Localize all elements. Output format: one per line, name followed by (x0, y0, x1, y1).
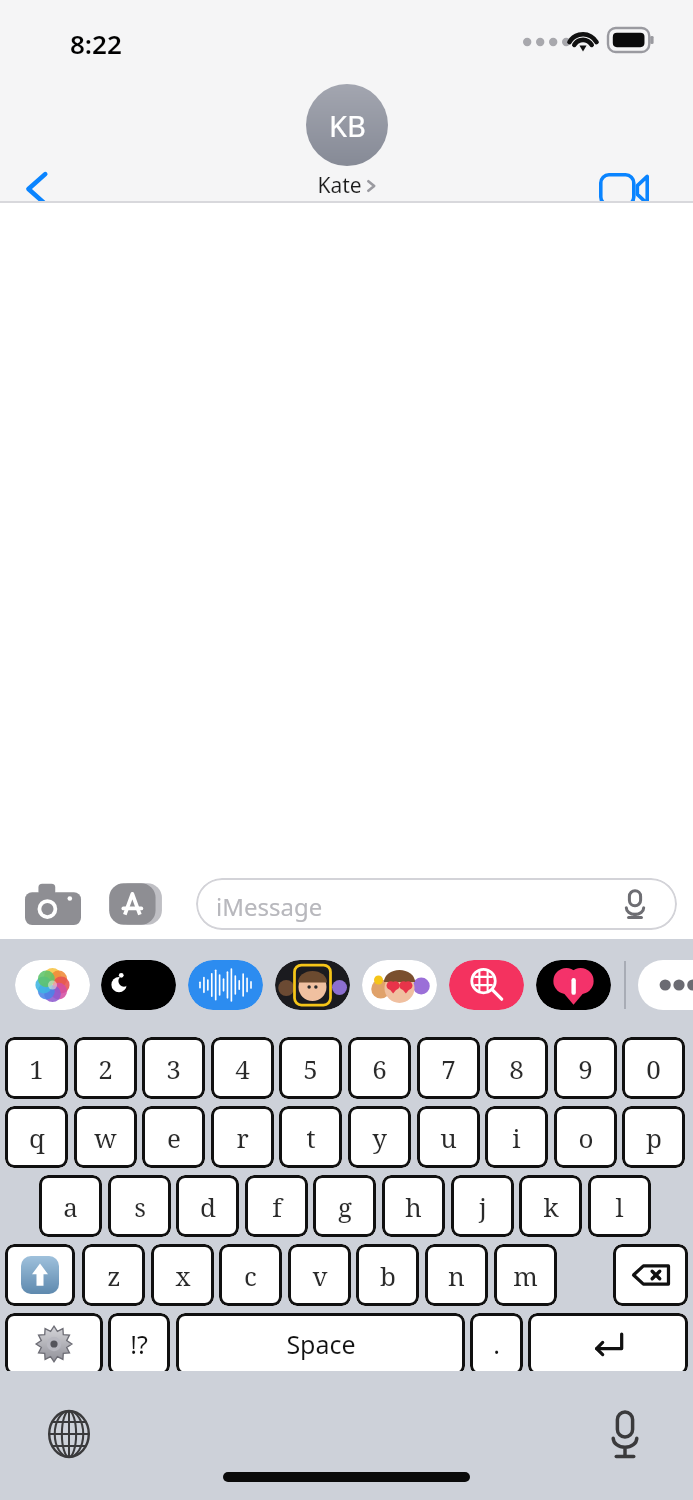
staticText: c (244, 1258, 257, 1293)
staticText: j (479, 1189, 487, 1224)
button[interactable]: 8 (485, 1037, 548, 1099)
button[interactable]: iMessage (196, 878, 677, 930)
button[interactable]: w (74, 1106, 137, 1168)
button[interactable]: v (288, 1244, 351, 1306)
staticText: m (513, 1258, 538, 1293)
staticText: 6 (372, 1051, 387, 1086)
staticText: b (380, 1258, 396, 1293)
staticText: h (405, 1189, 422, 1224)
button[interactable]: Shift (5, 1244, 75, 1306)
staticText: u (440, 1120, 457, 1155)
button[interactable]: 3 (142, 1037, 205, 1099)
button[interactable]: 6 (348, 1037, 411, 1099)
button[interactable]: . (470, 1313, 523, 1375)
button[interactable]: n (425, 1244, 488, 1306)
staticText: 7 (441, 1051, 456, 1086)
button[interactable]: e (142, 1106, 205, 1168)
button[interactable]: iMessage app (101, 960, 176, 1010)
staticText: z (107, 1258, 121, 1293)
button[interactable]: Return (528, 1313, 688, 1375)
button[interactable]: r (211, 1106, 274, 1168)
button[interactable]: iMessage app (188, 960, 263, 1010)
staticText: w (94, 1120, 117, 1155)
button[interactable]: p (622, 1106, 685, 1168)
staticText: s (134, 1189, 146, 1224)
button[interactable]: Camera (16, 880, 90, 928)
button[interactable]: 5 (279, 1037, 342, 1099)
staticText: e (167, 1120, 181, 1155)
staticText: Kate (317, 171, 362, 200)
button[interactable]: t (279, 1106, 342, 1168)
button[interactable]: c (219, 1244, 282, 1306)
staticText: 5 (303, 1051, 318, 1086)
staticText: a (63, 1189, 78, 1224)
button[interactable]: Dictate (592, 1403, 658, 1465)
button[interactable]: i (485, 1106, 548, 1168)
staticText: 3 (166, 1051, 181, 1086)
button[interactable]: 4 (211, 1037, 274, 1099)
button[interactable]: iMessage app (449, 960, 524, 1010)
staticText: l (615, 1189, 624, 1224)
staticText: . (493, 1327, 500, 1361)
staticText: n (448, 1258, 465, 1293)
button[interactable]: k (519, 1175, 582, 1237)
button[interactable]: !? (108, 1313, 170, 1375)
staticText: i (512, 1120, 521, 1155)
button[interactable]: s (108, 1175, 171, 1237)
staticText: 8:22 (70, 26, 122, 61)
button[interactable]: Change keyboard language (36, 1403, 102, 1465)
staticText: 9 (578, 1051, 593, 1086)
button[interactable]: More apps (638, 960, 693, 1010)
button[interactable]: q (5, 1106, 68, 1168)
button[interactable]: f (245, 1175, 308, 1237)
staticText: f (272, 1189, 282, 1224)
button[interactable]: Back (8, 158, 70, 220)
button[interactable]: l (588, 1175, 651, 1237)
button[interactable]: d (176, 1175, 239, 1237)
staticText: k (543, 1189, 559, 1224)
staticText: !? (130, 1327, 148, 1361)
button[interactable]: Apps (100, 880, 174, 928)
staticText: q (29, 1120, 45, 1155)
button[interactable]: u (417, 1106, 480, 1168)
button[interactable]: 9 (554, 1037, 617, 1099)
button[interactable]: 1 (5, 1037, 68, 1099)
staticText: y (372, 1120, 387, 1155)
button[interactable]: Space (176, 1313, 465, 1375)
button[interactable]: iMessage app (15, 960, 90, 1010)
staticText: KB (329, 106, 366, 145)
staticText: o (578, 1120, 594, 1155)
button[interactable]: 7 (417, 1037, 480, 1099)
button[interactable]: b (356, 1244, 419, 1306)
staticText: 8 (509, 1051, 524, 1086)
button[interactable]: Keyboard settings (5, 1313, 103, 1375)
button[interactable]: KB (280, 84, 413, 200)
button[interactable]: 2 (74, 1037, 137, 1099)
button[interactable]: g (313, 1175, 376, 1237)
button[interactable]: iMessage app (275, 960, 350, 1010)
staticText: 0 (646, 1051, 661, 1086)
button[interactable]: z (82, 1244, 145, 1306)
staticText: 2 (98, 1051, 113, 1086)
staticText: x (175, 1258, 191, 1293)
staticText: d (200, 1189, 216, 1224)
staticText: 4 (235, 1051, 250, 1086)
staticText: t (306, 1120, 316, 1155)
button[interactable]: y (348, 1106, 411, 1168)
staticText: p (646, 1120, 662, 1155)
staticText: Space (286, 1327, 356, 1361)
button[interactable]: h (382, 1175, 445, 1237)
button[interactable]: 0 (622, 1037, 685, 1099)
staticText: g (338, 1189, 352, 1224)
button[interactable]: FaceTime video call (592, 164, 656, 216)
button[interactable]: iMessage app (536, 960, 611, 1010)
button[interactable]: iMessage app (362, 960, 437, 1010)
button[interactable]: m (494, 1244, 557, 1306)
button[interactable]: x (151, 1244, 214, 1306)
button[interactable]: Backspace (613, 1244, 688, 1306)
button[interactable]: o (554, 1106, 617, 1168)
staticText: 1 (29, 1051, 44, 1086)
button[interactable]: j (451, 1175, 514, 1237)
staticText: iMessage (216, 890, 323, 923)
button[interactable]: a (39, 1175, 102, 1237)
